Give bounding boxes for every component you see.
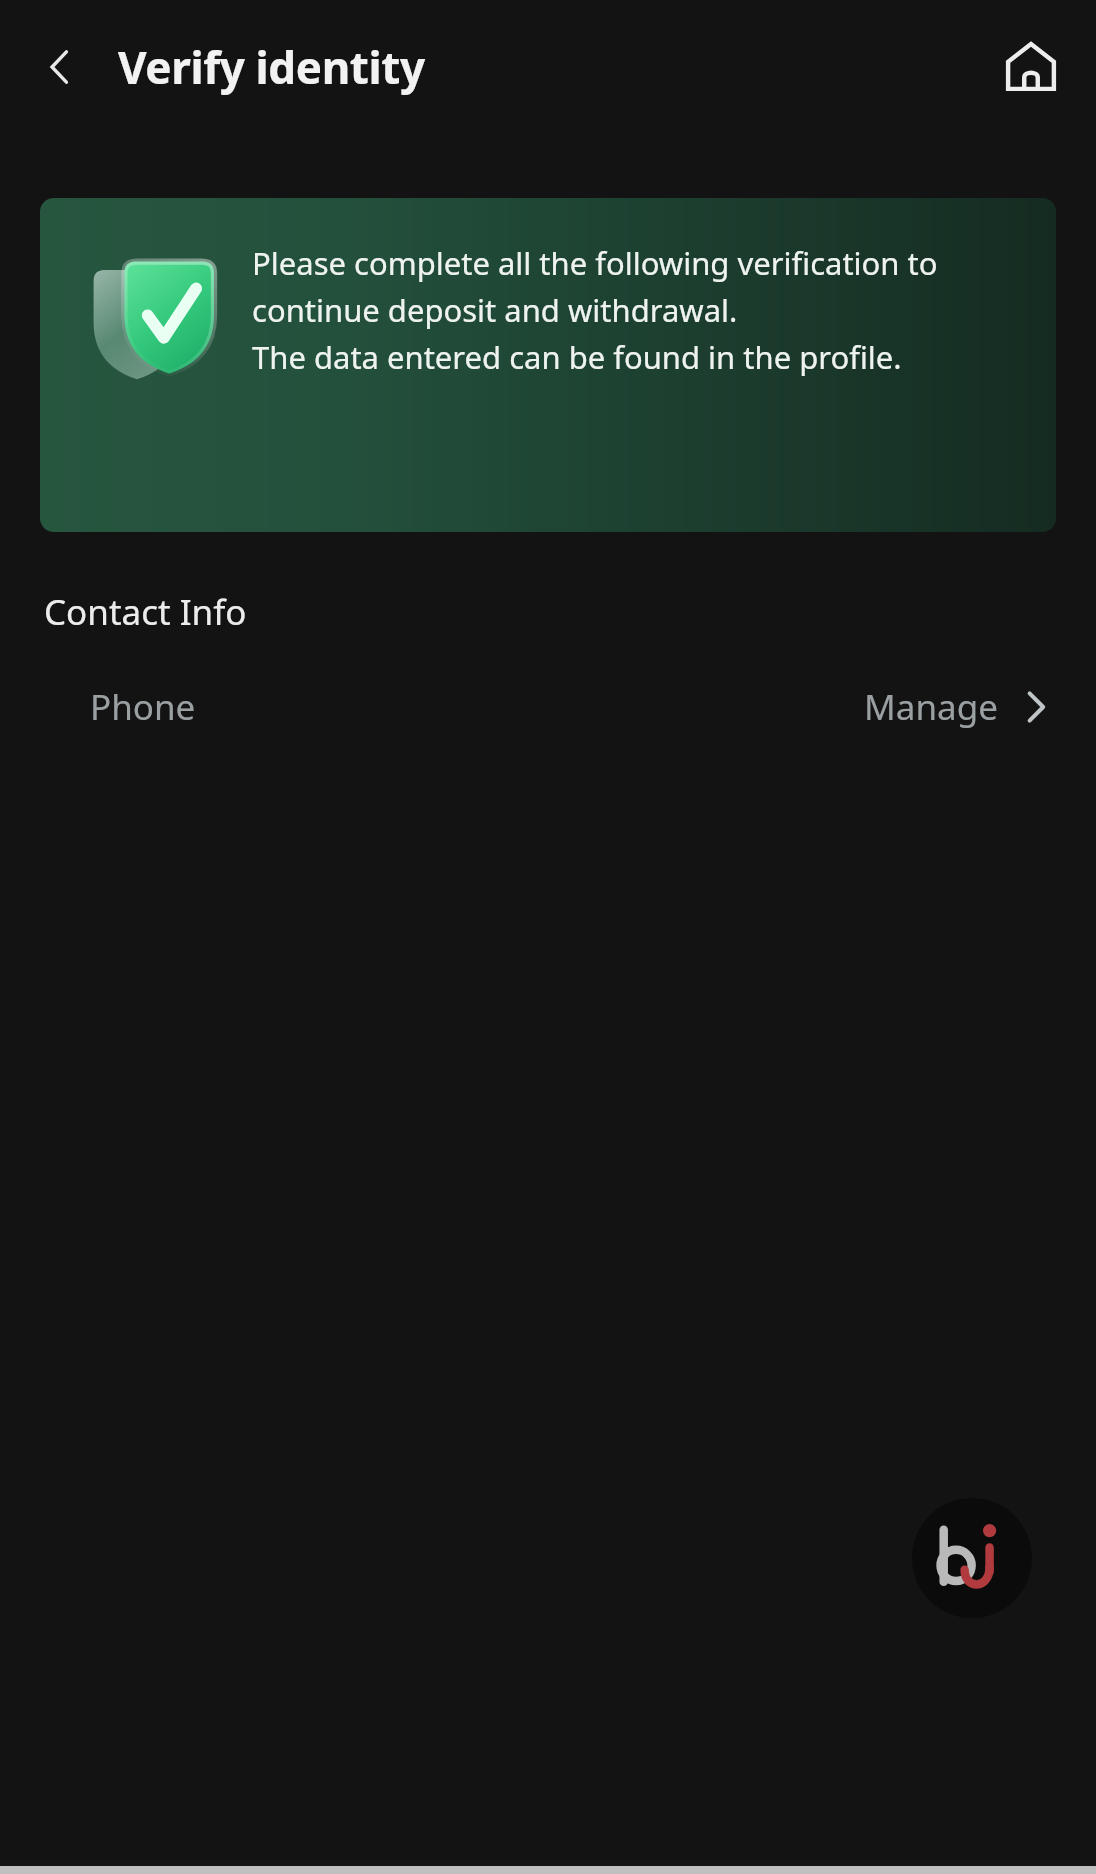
staticText: Manage [864, 683, 998, 731]
staticText: Phone [90, 683, 196, 731]
staticText: Please complete all the following verifi… [252, 242, 1030, 378]
staticText: Verify identity [118, 37, 425, 97]
button[interactable]: Home [992, 28, 1070, 106]
button[interactable]: bj support [912, 1498, 1032, 1618]
staticText: Contact Info [44, 588, 247, 636]
button[interactable]: Phone [0, 664, 1096, 750]
button[interactable]: Back [24, 31, 96, 103]
